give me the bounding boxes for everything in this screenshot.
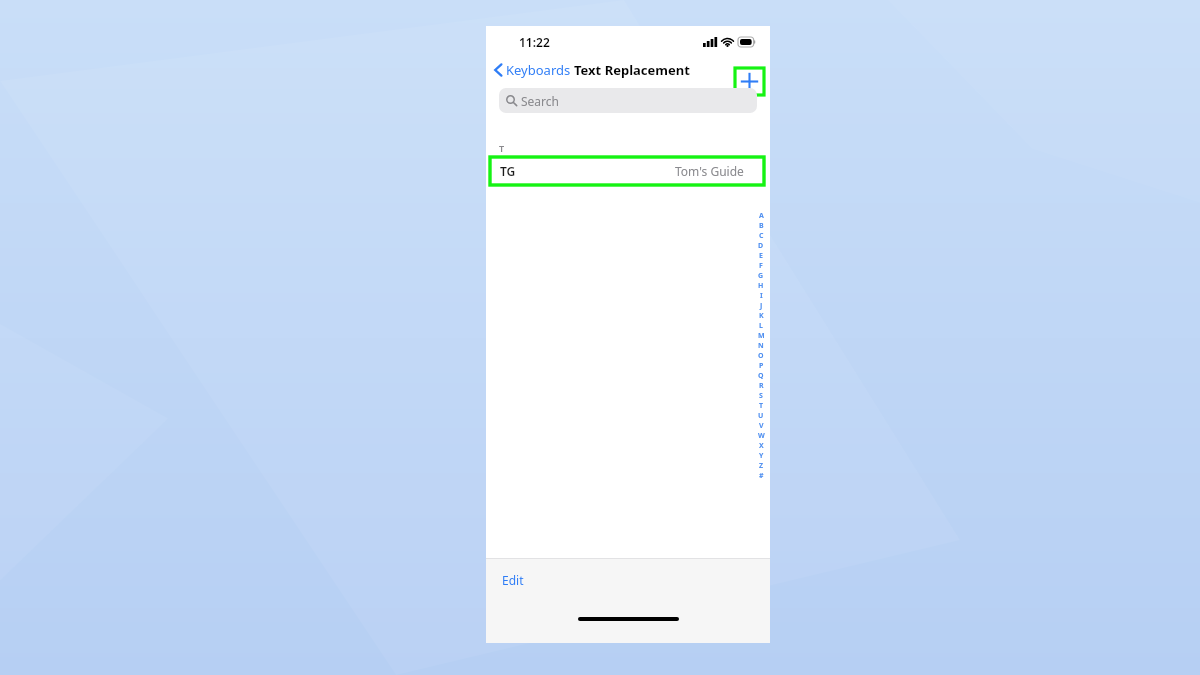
staticText: Text Replacement	[574, 61, 690, 79]
staticText: K	[759, 311, 764, 321]
staticText: S	[759, 391, 763, 401]
staticText: F	[759, 261, 763, 271]
staticText: V	[759, 421, 764, 431]
button[interactable]: Keyboards	[492, 57, 573, 83]
staticText: N	[758, 341, 764, 351]
button[interactable]: Section index	[754, 211, 768, 481]
staticText: Keyboards	[506, 61, 571, 79]
button[interactable]: Add text replacement	[735, 68, 764, 95]
staticText: I	[760, 291, 763, 301]
staticText: L	[759, 321, 763, 331]
staticText: W	[758, 431, 765, 441]
staticText: P	[759, 361, 764, 371]
staticText: Y	[759, 451, 764, 461]
staticText: X	[759, 441, 764, 451]
staticText: U	[758, 411, 764, 421]
staticText: T	[759, 401, 764, 411]
staticText: M	[758, 331, 765, 341]
staticText: 11:22	[519, 34, 550, 50]
staticText: O	[758, 351, 764, 361]
staticText: #	[759, 471, 764, 481]
staticText: D	[758, 241, 764, 251]
staticText: R	[759, 381, 764, 391]
staticText: C	[759, 231, 764, 241]
staticText: J	[760, 301, 763, 311]
staticText: Q	[758, 371, 764, 381]
button[interactable]: TG	[490, 157, 764, 185]
button[interactable]: Search	[499, 88, 757, 113]
staticText: A	[759, 211, 764, 221]
staticText: Tom's Guide	[675, 163, 744, 179]
staticText: B	[759, 221, 764, 231]
staticText: E	[759, 251, 763, 261]
staticText: Search	[521, 93, 559, 109]
staticText: Z	[759, 461, 764, 471]
staticText: TG	[500, 163, 516, 179]
staticText: G	[758, 271, 764, 281]
staticText: T	[499, 142, 505, 154]
staticText: H	[758, 281, 764, 291]
button[interactable]: Edit	[500, 570, 526, 590]
